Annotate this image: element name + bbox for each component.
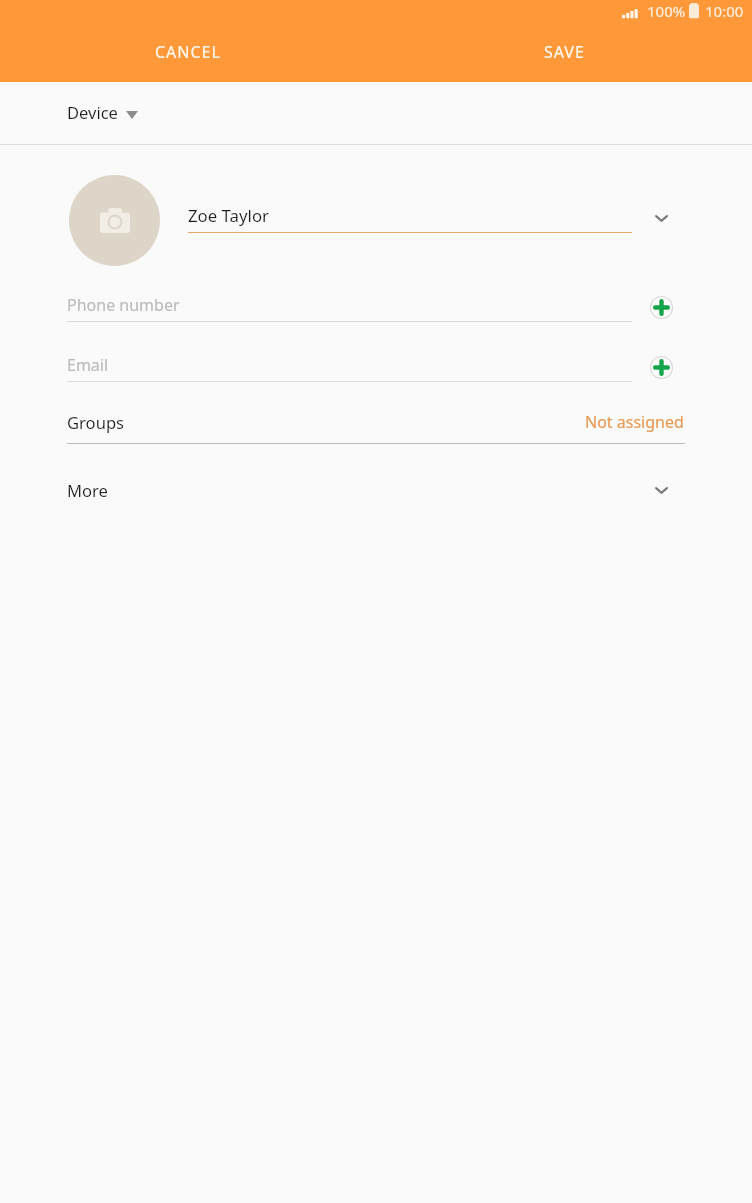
staticText: SAVE	[544, 41, 585, 63]
button[interactable]: Phone number	[67, 285, 632, 322]
button[interactable]: Expand name fields	[637, 194, 686, 243]
staticText: Not assigned	[585, 411, 684, 433]
staticText: More	[67, 479, 108, 502]
button[interactable]: Add phone number	[637, 283, 686, 332]
button[interactable]: Add email	[637, 343, 686, 392]
staticText: Zoe Taylor	[188, 204, 270, 227]
button[interactable]: More	[0, 462, 752, 518]
staticText: Device	[67, 101, 118, 123]
staticText: CANCEL	[155, 41, 221, 63]
button[interactable]: Groups	[0, 400, 752, 444]
button[interactable]: Add contact photo	[69, 175, 160, 266]
staticText: Phone number	[67, 294, 180, 316]
button[interactable]: CANCEL	[0, 24, 376, 79]
button[interactable]: Email	[67, 345, 632, 382]
staticText: 10:00	[705, 1, 744, 21]
button[interactable]: Device	[0, 82, 752, 144]
staticText: Groups	[67, 411, 125, 434]
button[interactable]: SAVE	[376, 24, 752, 79]
staticText: 100%	[647, 1, 686, 21]
staticText: Email	[67, 354, 109, 376]
